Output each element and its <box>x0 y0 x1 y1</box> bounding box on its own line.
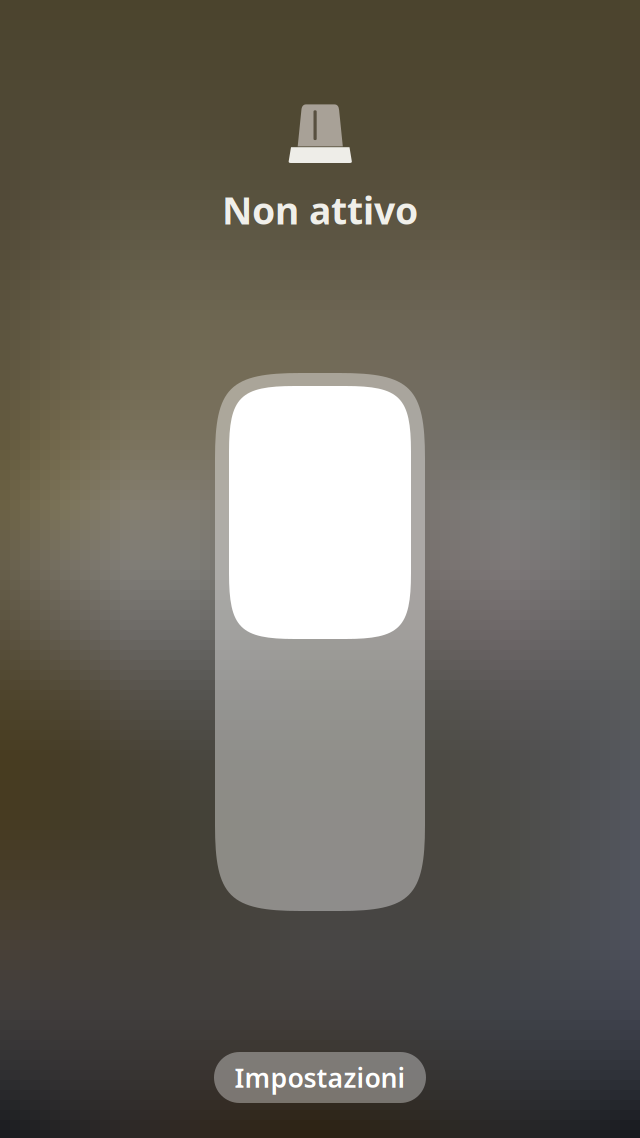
button[interactable]: Impostazioni <box>214 1052 426 1103</box>
button[interactable]: Luminosità <box>215 373 425 911</box>
staticText: Non attivo <box>222 185 418 235</box>
staticText: Impostazioni <box>234 1060 405 1095</box>
